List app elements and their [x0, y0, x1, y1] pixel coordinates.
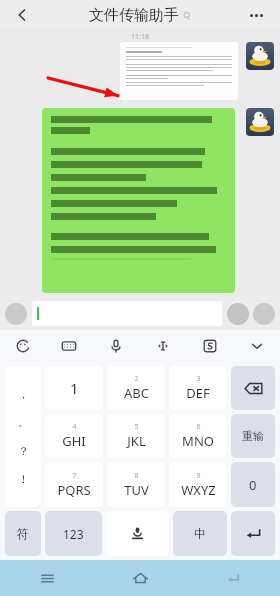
staticText: 0: [249, 476, 257, 494]
staticText: 7: [72, 471, 77, 481]
button[interactable]: 123: [45, 511, 102, 556]
staticText: ，: [18, 387, 29, 401]
button[interactable]: ，: [5, 366, 41, 507]
button[interactable]: Voice: [92, 330, 139, 362]
staticText: 9: [196, 471, 201, 481]
button[interactable]: [120, 42, 238, 100]
staticText: 中: [194, 526, 206, 541]
button[interactable]: 中: [173, 511, 227, 556]
staticText: 4: [72, 422, 77, 432]
staticText: 11:18: [131, 32, 149, 42]
button[interactable]: Voice input: [106, 511, 169, 556]
button[interactable]: Avatar: [246, 42, 274, 70]
staticText: 5: [134, 422, 139, 432]
button[interactable]: Hide keyboard: [233, 330, 280, 362]
staticText: 3: [196, 374, 201, 384]
button[interactable]: Voice input: [5, 303, 27, 325]
staticText: ABC: [124, 384, 149, 402]
button[interactable]: Emoji: [227, 303, 249, 325]
button[interactable]: 5: [107, 414, 165, 458]
button[interactable]: 3: [169, 366, 227, 410]
staticText: JKL: [127, 432, 146, 450]
button[interactable]: More options: [242, 3, 270, 27]
button[interactable]: Sogou: [186, 330, 233, 362]
button[interactable]: Enter: [231, 511, 275, 556]
staticText: TUV: [124, 481, 149, 499]
button[interactable]: 8: [107, 462, 165, 507]
button[interactable]: 9: [169, 462, 227, 507]
button[interactable]: Emoji: [0, 330, 46, 362]
staticText: DEF: [186, 384, 210, 402]
staticText: 。: [18, 415, 29, 429]
button[interactable]: 重输: [231, 414, 275, 458]
staticText: 8: [134, 471, 139, 481]
button[interactable]: 1: [45, 366, 103, 410]
staticText: 重输: [242, 429, 264, 443]
button[interactable]: [32, 301, 222, 326]
button[interactable]: 符: [5, 511, 41, 556]
staticText: MNO: [182, 432, 214, 450]
button[interactable]: [42, 108, 235, 293]
staticText: ！: [18, 472, 29, 486]
button[interactable]: Avatar: [246, 108, 274, 136]
button[interactable]: 7: [45, 462, 103, 507]
staticText: 2: [134, 374, 139, 384]
button[interactable]: Keyboard layout: [46, 330, 92, 362]
staticText: GHI: [62, 432, 86, 450]
button[interactable]: 2: [107, 366, 165, 410]
button[interactable]: Back: [187, 560, 280, 596]
staticText: ？: [18, 444, 29, 458]
button[interactable]: More functions: [253, 303, 275, 325]
staticText: WXYZ: [181, 481, 216, 499]
button[interactable]: Recent apps: [0, 560, 94, 596]
staticText: 文件传输助手: [89, 6, 179, 25]
staticText: 6: [196, 422, 201, 432]
staticText: 123: [63, 526, 84, 542]
staticText: PQRS: [57, 481, 91, 499]
button[interactable]: 0: [231, 462, 275, 507]
staticText: 符: [17, 526, 29, 541]
button[interactable]: 6: [169, 414, 227, 458]
staticText: 1: [70, 378, 79, 398]
button[interactable]: Back: [8, 1, 36, 29]
button[interactable]: Home: [94, 560, 187, 596]
button[interactable]: Backspace: [231, 366, 275, 410]
button[interactable]: 4: [45, 414, 103, 458]
button[interactable]: Edit cursor: [139, 330, 186, 362]
